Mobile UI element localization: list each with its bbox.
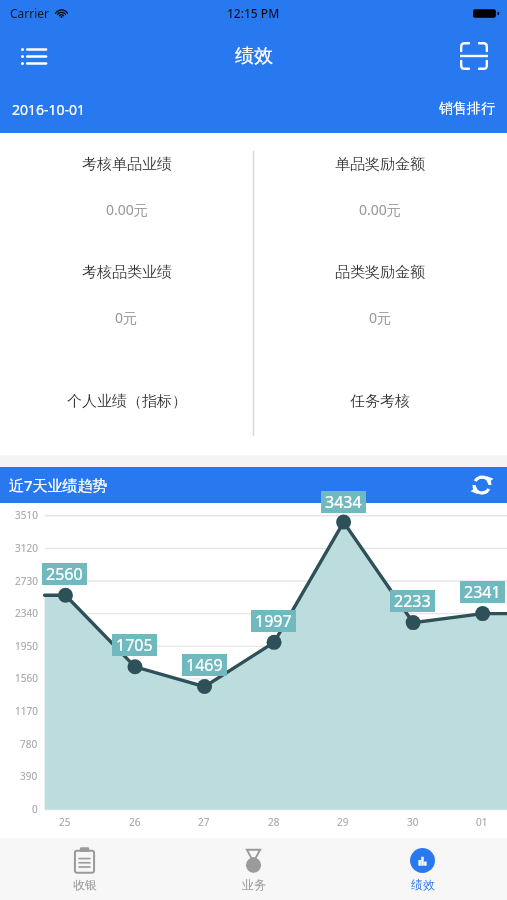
staticText: 个人业绩（指标） (67, 392, 187, 411)
staticText: 25 (59, 815, 71, 829)
staticText: 2233 (394, 590, 431, 612)
staticText: 30 (407, 815, 419, 829)
button[interactable]: 2016-10-01 (0, 92, 98, 127)
staticText: 3510 (15, 508, 38, 522)
button[interactable]: 绩效 (338, 838, 507, 900)
staticText: 收银 (73, 877, 97, 892)
staticText: 业务 (242, 877, 266, 892)
staticText: Carrier (10, 5, 50, 21)
staticText: 3434 (325, 491, 362, 513)
button[interactable]: Scan (451, 33, 497, 79)
button[interactable]: 品类奖励金额 (253, 241, 507, 348)
staticText: 绩效 (235, 44, 273, 68)
staticText: 2016-10-01 (12, 100, 86, 119)
staticText: 近7天业绩趋势 (9, 475, 108, 495)
staticText: 27 (198, 815, 210, 829)
staticText: 0元 (369, 308, 392, 327)
button[interactable]: 个人业绩（指标） (0, 348, 253, 455)
staticText: 1997 (255, 610, 292, 632)
staticText: 1705 (116, 634, 153, 656)
staticText: 0.00元 (359, 200, 401, 219)
staticText: 29 (337, 815, 349, 829)
staticText: 780 (20, 737, 38, 751)
staticText: 390 (20, 769, 38, 783)
button[interactable]: 收银 (0, 838, 169, 900)
staticText: 0.00元 (106, 200, 148, 219)
staticText: 2341 (464, 581, 501, 603)
staticText: 3120 (15, 541, 38, 555)
staticText: 12:15 PM (227, 5, 280, 21)
staticText: 单品奖励金额 (335, 155, 425, 174)
button[interactable]: Menu (10, 33, 56, 79)
staticText: 01 (476, 815, 488, 829)
button[interactable]: Refresh (466, 469, 498, 501)
button[interactable]: 任务考核 (253, 348, 507, 455)
staticText: 28 (268, 815, 280, 829)
button[interactable]: 考核品类业绩 (0, 241, 253, 348)
staticText: 任务考核 (350, 392, 410, 411)
staticText: 销售排行 (439, 100, 495, 118)
staticText: 0元 (115, 308, 138, 327)
staticText: 1170 (15, 704, 38, 718)
staticText: 品类奖励金额 (335, 263, 425, 282)
staticText: 2340 (15, 606, 38, 620)
staticText: 2560 (46, 563, 83, 585)
staticText: 0 (32, 802, 38, 816)
staticText: 26 (129, 815, 141, 829)
staticText: 1469 (186, 654, 223, 676)
button[interactable]: 单品奖励金额 (253, 133, 507, 241)
staticText: 考核品类业绩 (82, 263, 172, 282)
button[interactable]: 销售排行 (427, 92, 507, 126)
staticText: 考核单品业绩 (82, 155, 172, 174)
staticText: 2730 (15, 574, 38, 588)
button[interactable]: 考核单品业绩 (0, 133, 253, 241)
button[interactable]: 业务 (169, 838, 338, 900)
staticText: 1950 (15, 639, 38, 653)
staticText: 1560 (15, 671, 38, 685)
staticText: 绩效 (411, 877, 435, 892)
